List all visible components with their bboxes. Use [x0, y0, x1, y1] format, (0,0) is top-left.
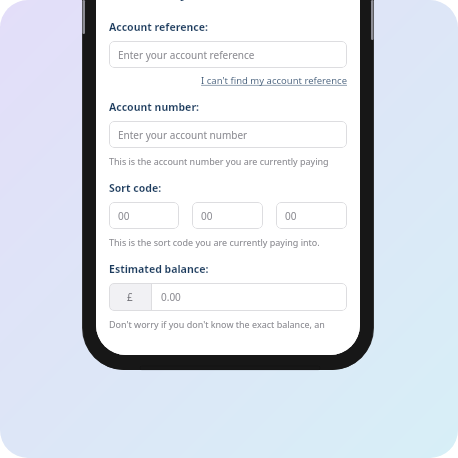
staticText: Enter your account number [118, 128, 248, 142]
button[interactable]: Enter your account reference [109, 41, 347, 68]
button[interactable]: 00 [192, 202, 263, 229]
staticText: 0.00 [161, 290, 181, 304]
button[interactable]: I can't find my account reference [201, 74, 347, 87]
staticText: 00 [201, 209, 213, 223]
staticText: Don't worry if you don't know the exact … [109, 318, 347, 330]
staticText: This is the account number you are curre… [109, 155, 347, 167]
staticText: Sort code: [109, 181, 162, 195]
button[interactable]: £ [109, 283, 347, 311]
staticText: I can't find my account reference [201, 74, 347, 87]
staticText: Enter your account reference [118, 48, 255, 62]
button[interactable]: 00 [109, 202, 179, 229]
staticText: Account reference: [109, 20, 208, 34]
staticText: Estimated balance: [109, 262, 209, 276]
staticText: £ [127, 290, 133, 304]
staticText: Please provide us with the details of yo… [109, 0, 347, 3]
staticText: Account number: [109, 100, 200, 114]
button[interactable]: 00 [276, 202, 347, 229]
staticText: 00 [118, 209, 130, 223]
staticText: This is the sort code you are currently … [109, 236, 320, 248]
button[interactable]: Enter your account number [109, 121, 347, 148]
staticText: 00 [285, 209, 297, 223]
